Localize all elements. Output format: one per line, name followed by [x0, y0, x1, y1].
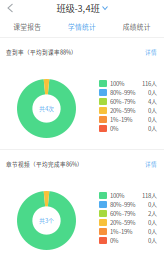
staticText: 共3个	[39, 216, 54, 225]
staticText: 1%-19%	[110, 115, 133, 124]
staticText: 100%	[110, 191, 125, 200]
staticText: 60%-79%	[110, 209, 136, 218]
staticText: 班级-3,4班	[56, 1, 99, 15]
staticText: 0人	[148, 124, 157, 133]
staticText: 详情	[145, 160, 157, 168]
staticText: 20%-59%	[110, 106, 136, 115]
staticText: 80%-99%	[110, 200, 136, 209]
staticText: 0人	[148, 106, 157, 115]
staticText: 0%	[110, 124, 119, 133]
staticText: 成绩统计	[123, 22, 151, 31]
staticText: 0人	[148, 200, 157, 209]
button[interactable]: 返回	[0, 0, 20, 16]
staticText: 详情	[145, 48, 157, 56]
staticText: 共4次	[39, 104, 54, 113]
button[interactable]: 详情	[139, 155, 164, 173]
staticText: 0%	[110, 236, 119, 245]
staticText: 0人	[148, 115, 157, 124]
staticText: 查到率（平均到课率88%）	[6, 48, 77, 56]
staticText: 2人	[148, 209, 157, 218]
staticText: 章节视频（平均完成率86%）	[6, 160, 83, 168]
staticText: 学情统计	[68, 22, 96, 31]
staticText: 100%	[110, 79, 125, 88]
button[interactable]: 详情	[139, 43, 164, 61]
staticText: 116人	[142, 79, 157, 88]
staticText: 60%-79%	[110, 97, 136, 106]
staticText: 课堂报告	[13, 22, 41, 31]
staticText: 0人	[148, 227, 157, 236]
staticText: 118人	[142, 191, 157, 200]
button[interactable]: 成绩统计	[109, 16, 164, 37]
staticText: 1%-19%	[110, 227, 133, 236]
staticText: 80%-99%	[110, 88, 136, 97]
button[interactable]: 课堂报告	[0, 16, 55, 37]
staticText: 0人	[148, 236, 157, 245]
staticText: 0人	[148, 88, 157, 97]
staticText: 0人	[148, 218, 157, 227]
staticText: 20%-59%	[110, 218, 136, 227]
staticText: 4人	[148, 97, 157, 106]
button[interactable]: 学情统计	[55, 16, 109, 37]
